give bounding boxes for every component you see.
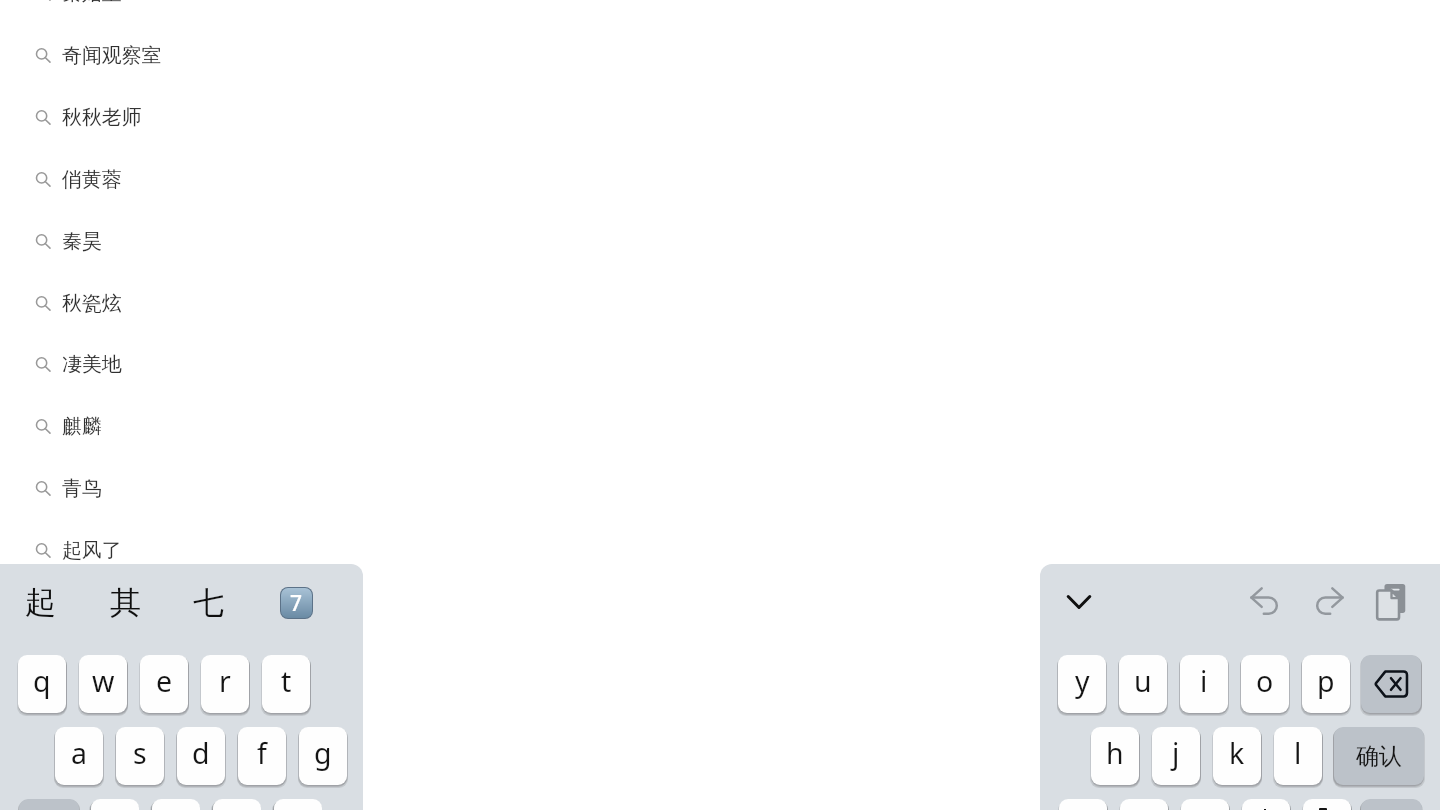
staticText: 其 — [110, 583, 141, 622]
staticText: w — [92, 662, 115, 701]
button[interactable]: 起 — [25, 579, 69, 625]
button[interactable]: Redo — [1306, 579, 1352, 625]
button[interactable]: 。 — [1303, 799, 1351, 810]
staticText: 麒麟 — [62, 414, 102, 439]
staticText: e — [156, 662, 173, 701]
button[interactable]: s — [116, 727, 164, 785]
staticText: p — [1317, 662, 1335, 701]
staticText: 。 — [1313, 807, 1342, 810]
button[interactable]: 秋瓷炫 — [0, 272, 1040, 334]
staticText: 七 — [193, 583, 224, 622]
staticText: s — [133, 734, 147, 773]
staticText: u — [1134, 662, 1152, 701]
button[interactable]: t — [262, 655, 310, 713]
button[interactable]: v — [274, 799, 322, 810]
staticText: 秦始皇 — [62, 0, 122, 6]
staticText: 青鸟 — [62, 476, 102, 501]
staticText: ， — [1252, 807, 1281, 810]
staticText: 俏黄蓉 — [62, 167, 122, 192]
staticText: 奇闻观察室 — [62, 43, 162, 68]
button[interactable]: 其 — [110, 579, 154, 625]
staticText: 确认 — [1356, 742, 1402, 771]
button[interactable]: Undo — [1242, 579, 1288, 625]
staticText: f — [257, 734, 267, 773]
button[interactable]: j — [1152, 727, 1200, 785]
staticText: g — [314, 734, 332, 773]
button[interactable]: x — [152, 799, 200, 810]
button[interactable]: p — [1302, 655, 1350, 713]
button[interactable]: 起风了 — [0, 519, 1040, 581]
staticText: i — [1200, 662, 1208, 701]
button[interactable]: y — [1058, 655, 1106, 713]
staticText: o — [1256, 662, 1274, 701]
button[interactable]: q — [18, 655, 66, 713]
button[interactable]: 七 — [193, 579, 237, 625]
staticText: k — [1229, 734, 1245, 773]
button[interactable]: o — [1241, 655, 1289, 713]
staticText: 起 — [25, 583, 56, 622]
staticText: t — [281, 662, 292, 701]
staticText: r — [219, 662, 231, 701]
button[interactable]: f — [238, 727, 286, 785]
button[interactable]: 秋秋老师 — [0, 86, 1040, 148]
staticText: 秋秋老师 — [62, 105, 142, 130]
staticText: 凄美地 — [62, 352, 122, 377]
button[interactable]: Clipboard — [1363, 574, 1421, 632]
staticText: j — [1172, 734, 1180, 773]
button[interactable]: 凄美地 — [0, 333, 1040, 395]
button[interactable]: l — [1274, 727, 1322, 785]
button[interactable]: Symbols — [1361, 799, 1422, 810]
button[interactable]: w — [79, 655, 127, 713]
button[interactable]: a — [55, 727, 103, 785]
button[interactable]: 青鸟 — [0, 457, 1040, 519]
button[interactable]: u — [1119, 655, 1167, 713]
button[interactable]: e — [140, 655, 188, 713]
button[interactable]: 7 — [281, 588, 312, 618]
staticText: l — [1294, 734, 1302, 773]
button[interactable]: ， — [1242, 799, 1290, 810]
button[interactable]: d — [177, 727, 225, 785]
staticText: 起风了 — [62, 538, 122, 563]
button[interactable]: r — [201, 655, 249, 713]
button[interactable]: 俏黄蓉 — [0, 148, 1040, 210]
button[interactable]: n — [1120, 799, 1168, 810]
button[interactable]: Shift — [19, 799, 79, 810]
button[interactable]: z — [91, 799, 139, 810]
staticText: 7 — [290, 589, 303, 618]
staticText: y — [1075, 662, 1090, 701]
button[interactable]: c — [213, 799, 261, 810]
button[interactable]: k — [1213, 727, 1261, 785]
staticText: 秋瓷炫 — [62, 291, 122, 316]
staticText: q — [33, 662, 51, 701]
button[interactable]: 确认 — [1334, 727, 1424, 785]
button[interactable]: Collapse keyboard — [1056, 579, 1102, 625]
staticText: 秦昊 — [62, 229, 102, 254]
button[interactable]: 秦昊 — [0, 210, 1040, 272]
button[interactable]: g — [299, 727, 347, 785]
button[interactable]: 秦始皇 — [0, 0, 1040, 24]
button[interactable]: h — [1091, 727, 1139, 785]
button[interactable]: 麒麟 — [0, 395, 1040, 457]
staticText: d — [192, 734, 210, 773]
button[interactable]: 奇闻观察室 — [0, 24, 1040, 86]
button[interactable]: m — [1181, 799, 1229, 810]
staticText: h — [1106, 734, 1124, 773]
button[interactable]: b — [1059, 799, 1107, 810]
button[interactable]: i — [1180, 655, 1228, 713]
staticText: a — [71, 734, 87, 773]
button[interactable]: Backspace — [1361, 655, 1421, 713]
